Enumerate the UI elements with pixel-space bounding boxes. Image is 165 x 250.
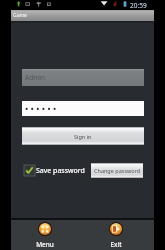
button[interactable]: Exit [97,220,135,250]
button[interactable]: Change password [91,163,143,178]
staticText: 20:59 [130,1,147,10]
staticText: Admin [25,73,45,82]
other: Menu [38,222,52,236]
other: Exit [109,222,123,236]
staticText: Save password [36,166,85,176]
staticText: Change password [94,167,141,174]
button[interactable]: Sign in [22,127,144,145]
staticText: Sign in [74,133,92,140]
staticText: Game [13,12,27,19]
staticText: Menu [36,240,54,249]
button[interactable]: Menu [26,220,64,250]
button[interactable]: Save password [24,165,85,176]
staticText: Exit [110,240,122,249]
